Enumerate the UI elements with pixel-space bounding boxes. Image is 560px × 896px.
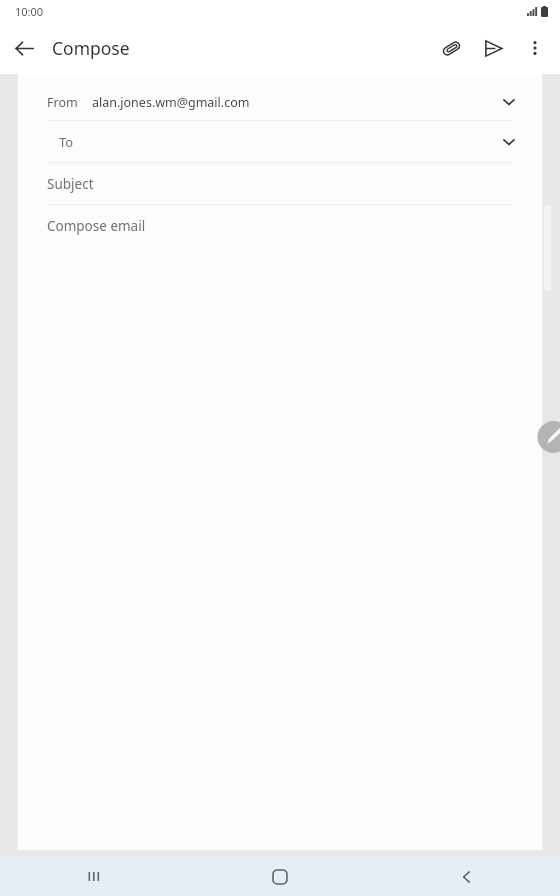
staticText: Compose xyxy=(52,36,130,60)
button[interactable]: Expand xyxy=(498,91,520,113)
button[interactable]: Subject xyxy=(18,163,542,204)
button[interactable]: Send xyxy=(472,27,514,69)
staticText: From xyxy=(47,94,78,111)
staticText: To xyxy=(59,133,74,151)
button[interactable]: Edge panel handle xyxy=(538,420,560,454)
button[interactable]: Expand xyxy=(498,131,520,153)
button[interactable]: Back xyxy=(0,24,48,72)
staticText: Subject xyxy=(47,175,94,193)
staticText: Compose email xyxy=(47,217,146,235)
button[interactable]: Back xyxy=(373,857,560,896)
button[interactable]: Attach file xyxy=(430,27,472,69)
button[interactable]: Home xyxy=(186,857,373,896)
staticText: 10:00 xyxy=(15,4,44,19)
button[interactable]: More options xyxy=(514,27,556,69)
button[interactable]: From xyxy=(18,84,542,120)
button[interactable]: Compose email xyxy=(18,205,542,246)
staticText: alan.jones.wm@gmail.com xyxy=(92,94,250,111)
button[interactable]: To xyxy=(18,121,542,162)
button[interactable]: Recent apps xyxy=(0,857,186,896)
